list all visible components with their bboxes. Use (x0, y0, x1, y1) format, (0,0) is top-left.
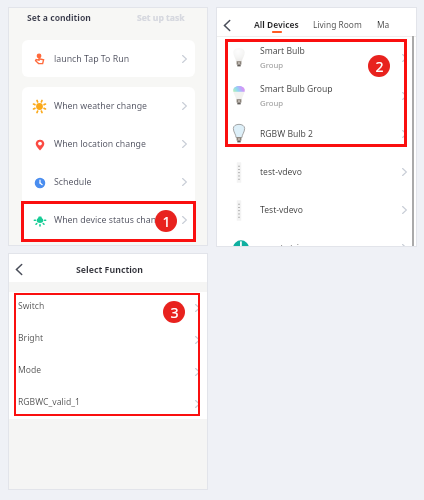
button[interactable]: test-vdevo (217, 153, 416, 191)
button[interactable]: Smart Bulb Group (217, 77, 416, 115)
staticText: All Devices (254, 19, 299, 30)
button[interactable]: Back (218, 16, 236, 34)
staticText: 2 (375, 57, 384, 76)
staticText: 3 (170, 303, 179, 322)
button[interactable]: When device status change (22, 201, 195, 239)
staticText: Smart Bulb (260, 45, 305, 57)
button[interactable]: Test-vdevo (217, 191, 416, 229)
button[interactable]: Switch (9, 292, 207, 324)
staticText: Group (260, 60, 284, 71)
staticText: Test-vdevo (260, 204, 303, 216)
button[interactable]: Mode (9, 356, 207, 388)
staticText: RGBW Bulb 2 (260, 128, 313, 140)
button[interactable]: Living Room (313, 19, 362, 30)
staticText: When device status change (54, 214, 167, 226)
button[interactable]: Ma (377, 19, 390, 30)
staticText: Smart Bulb Group (260, 83, 333, 95)
button[interactable]: All Devices (254, 19, 299, 30)
button[interactable]: Bright (9, 324, 207, 356)
staticText: When weather change (54, 100, 148, 112)
button[interactable]: RGBWC_valid_1 (9, 388, 207, 419)
button[interactable]: Set a condition (27, 12, 91, 24)
staticText: Bright (18, 332, 44, 344)
staticText: Switch (18, 300, 45, 312)
staticText: RGBWC_valid_1 (18, 396, 80, 408)
button[interactable]: Smart Bulb (217, 39, 416, 77)
button[interactable]: Set up task (137, 12, 185, 24)
staticText: Group (260, 98, 284, 109)
staticText: smart strip (260, 242, 305, 246)
staticText: Schedule (54, 176, 92, 188)
button[interactable]: Back (10, 260, 28, 278)
staticText: Select Function (76, 264, 144, 276)
staticText: Mode (18, 364, 42, 376)
staticText: test-vdevo (260, 166, 302, 178)
button[interactable]: When weather change (22, 87, 195, 125)
staticText: When location change (54, 138, 146, 150)
button[interactable]: RGBW Bulb 2 (217, 115, 416, 153)
button[interactable]: Schedule (22, 163, 195, 201)
button[interactable]: smart strip (217, 229, 416, 246)
button[interactable]: launch Tap To Run (22, 40, 195, 77)
staticText: launch Tap To Run (54, 53, 130, 65)
staticText: 1 (162, 212, 171, 231)
button[interactable]: When location change (22, 125, 195, 163)
